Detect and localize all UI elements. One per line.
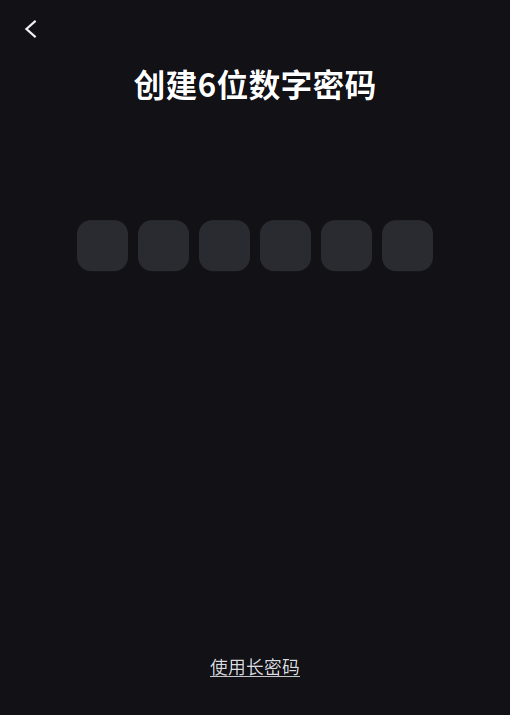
button[interactable]: Passcode entry	[77, 220, 433, 271]
button[interactable]: Back	[9, 7, 53, 51]
staticText: 创建6位数字密码	[133, 60, 376, 106]
staticText: 使用长密码	[210, 653, 300, 679]
button[interactable]: 使用长密码	[210, 653, 300, 679]
